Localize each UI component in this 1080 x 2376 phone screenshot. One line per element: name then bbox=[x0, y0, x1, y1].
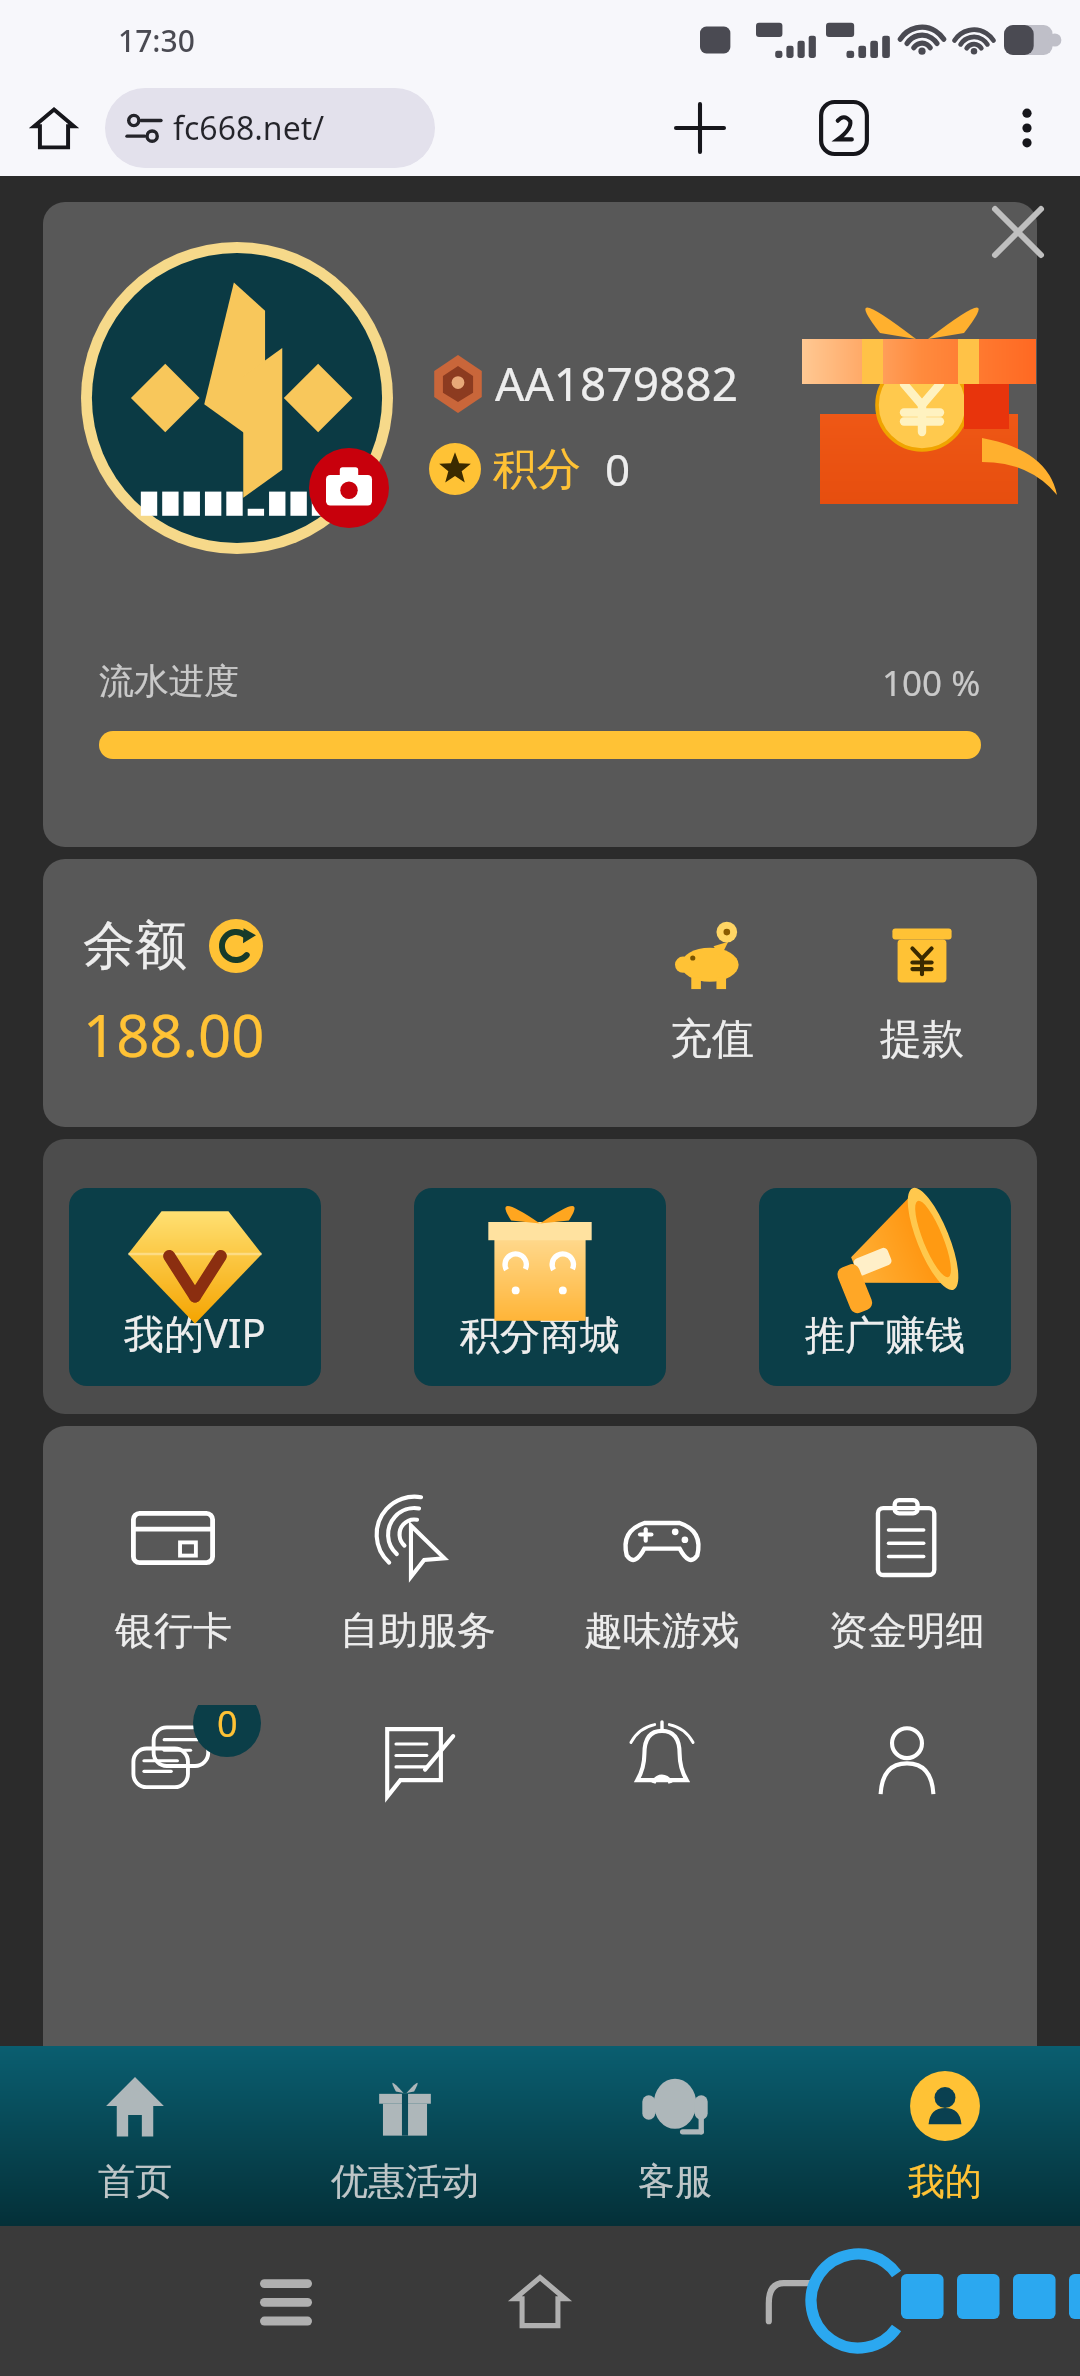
button[interactable]: 我的 bbox=[810, 2046, 1080, 2226]
button[interactable]: Change avatar bbox=[309, 448, 389, 528]
button[interactable]: Tabs bbox=[806, 90, 882, 166]
button[interactable]: 首页 bbox=[0, 2046, 270, 2226]
button[interactable]: 自助服务 bbox=[303, 1484, 533, 1659]
button[interactable] bbox=[303, 1705, 533, 1813]
staticText: 客服 bbox=[638, 2158, 712, 2205]
button[interactable]: Promotion gift bbox=[772, 240, 1072, 540]
staticText: 自助服务 bbox=[340, 1606, 496, 1655]
staticText: fc668.net/center/i bbox=[173, 106, 413, 150]
staticText: 0 bbox=[605, 439, 631, 499]
button[interactable] bbox=[547, 1705, 777, 1813]
staticText: 188.00 bbox=[83, 995, 265, 1074]
button[interactable]: 充值 bbox=[637, 915, 787, 1072]
button[interactable]: 优惠活动 bbox=[270, 2046, 540, 2226]
staticText: 积分 bbox=[493, 442, 581, 497]
button[interactable]: fc668.net/center/i bbox=[105, 88, 435, 168]
button[interactable]: 客服 bbox=[540, 2046, 810, 2226]
staticText: 我的VIP bbox=[124, 1305, 266, 1360]
button[interactable]: Change avatar bbox=[43, 202, 1037, 847]
staticText: 趣味游戏 bbox=[584, 1606, 740, 1655]
staticText: 积分商城 bbox=[460, 1310, 620, 1360]
staticText: 提款 bbox=[880, 1013, 964, 1066]
staticText: 0 bbox=[217, 1705, 238, 1748]
staticText: 资金明细 bbox=[829, 1606, 985, 1655]
button[interactable]: More options bbox=[994, 95, 1060, 161]
staticText: 流水进度 bbox=[99, 659, 239, 703]
button[interactable]: 趣味游戏 bbox=[547, 1484, 777, 1659]
staticText: 优惠活动 bbox=[331, 2158, 479, 2205]
staticText: 充值 bbox=[670, 1013, 754, 1066]
button[interactable]: Home bbox=[494, 2255, 586, 2347]
button[interactable]: 我的VIP bbox=[69, 1188, 321, 1386]
button[interactable]: Home bbox=[24, 98, 84, 158]
button[interactable] bbox=[792, 1705, 1022, 1813]
staticText: 银行卡 bbox=[115, 1606, 232, 1655]
button[interactable]: New tab bbox=[662, 90, 738, 166]
button[interactable]: Refresh balance bbox=[207, 917, 265, 975]
staticText: 100 % bbox=[882, 659, 981, 707]
button[interactable]: 银行卡 bbox=[58, 1484, 288, 1659]
button[interactable]: 提款 bbox=[847, 915, 997, 1072]
button[interactable]: 积分商城 bbox=[414, 1188, 666, 1386]
staticText: 推广赚钱 bbox=[805, 1310, 965, 1360]
button[interactable]: Close bbox=[982, 196, 1054, 268]
button[interactable]: Recent apps bbox=[240, 2255, 332, 2347]
staticText: 17:30 bbox=[118, 20, 195, 61]
staticText: AA1879882 bbox=[495, 352, 738, 415]
button[interactable]: Back bbox=[748, 2255, 840, 2347]
button[interactable]: 推广赚钱 bbox=[759, 1188, 1011, 1386]
staticText: 余额 bbox=[83, 913, 187, 979]
staticText: 我的 bbox=[908, 2158, 982, 2205]
button[interactable]: 资金明细 bbox=[792, 1484, 1022, 1659]
button[interactable]: 0 bbox=[58, 1705, 288, 1813]
staticText: 首页 bbox=[98, 2158, 172, 2205]
